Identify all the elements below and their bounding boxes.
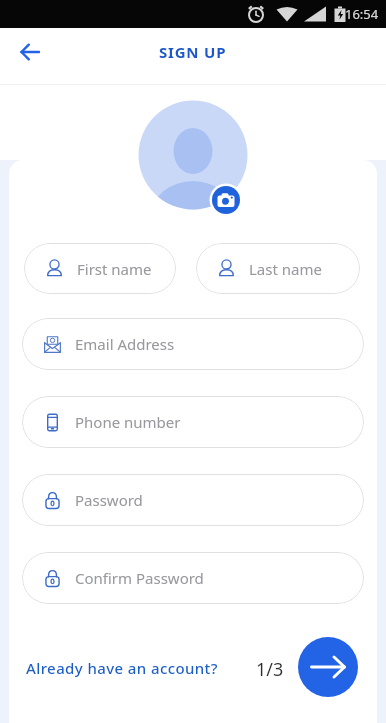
button[interactable]: First name (24, 243, 176, 294)
staticText: Phone number (75, 412, 181, 432)
staticText: 1/3 (256, 657, 284, 682)
staticText: Password (75, 490, 143, 510)
button[interactable]: Last name (196, 243, 360, 294)
staticText: Email Address (75, 334, 175, 354)
staticText: SIGN UP (159, 42, 227, 62)
button[interactable]: Password (22, 474, 364, 526)
button[interactable]: Email Address (22, 318, 364, 370)
button[interactable]: Already have an account? (20, 652, 224, 684)
staticText: First name (77, 259, 152, 279)
button[interactable] (298, 637, 358, 697)
staticText: Confirm Password (75, 568, 204, 588)
button[interactable] (209, 183, 243, 217)
staticText: 16:54 (345, 5, 379, 23)
button[interactable]: Phone number (22, 396, 364, 448)
staticText: Last name (249, 259, 322, 279)
staticText: Already have an account? (26, 658, 218, 678)
button[interactable] (10, 32, 50, 72)
button[interactable]: Confirm Password (22, 552, 364, 604)
